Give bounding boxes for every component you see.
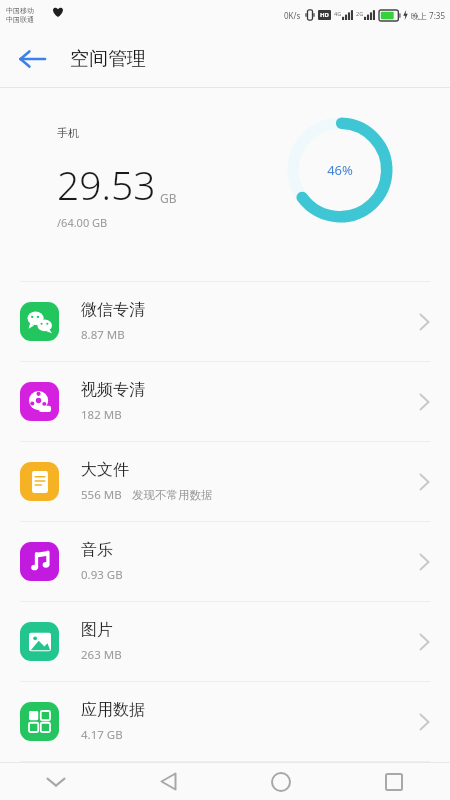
button[interactable]: 应用数据 bbox=[0, 682, 450, 761]
staticText: 图片 bbox=[81, 620, 113, 640]
staticText: 中国移动 bbox=[6, 6, 34, 15]
staticText: /64.00 GB bbox=[57, 215, 108, 230]
staticText: 中国联通 bbox=[6, 15, 34, 24]
staticText: 4G bbox=[334, 10, 342, 17]
staticText: 182 MB bbox=[81, 407, 122, 423]
button[interactable]: 音乐 bbox=[0, 522, 450, 601]
button[interactable]: 图片 bbox=[0, 602, 450, 681]
staticText: HD bbox=[320, 11, 329, 19]
staticText: 微信专清 bbox=[81, 300, 145, 320]
staticText: 263 MB bbox=[81, 647, 122, 663]
staticText: 0K/s bbox=[284, 10, 301, 21]
staticText: 46% bbox=[327, 161, 353, 179]
staticText: 发现不常用数据 bbox=[132, 488, 213, 502]
staticText: 视频专清 bbox=[81, 380, 145, 400]
staticText: 手机 bbox=[57, 126, 79, 140]
staticText: GB bbox=[160, 190, 177, 206]
button[interactable]: Home bbox=[224, 763, 337, 800]
staticText: 应用数据 bbox=[81, 700, 145, 720]
staticText: 556 MB bbox=[81, 487, 122, 503]
staticText: 4.17 GB bbox=[81, 727, 123, 743]
staticText: 29.53 bbox=[57, 158, 156, 211]
button[interactable]: 大文件 bbox=[0, 442, 450, 521]
button[interactable]: Recents bbox=[337, 763, 450, 800]
staticText: 8.87 MB bbox=[81, 327, 125, 343]
staticText: 大文件 bbox=[81, 460, 129, 480]
button[interactable]: 微信专清 bbox=[0, 282, 450, 361]
button[interactable]: 视频专清 bbox=[0, 362, 450, 441]
staticText: 空间管理 bbox=[70, 47, 146, 71]
button[interactable]: Hide keyboard bbox=[0, 763, 112, 800]
button[interactable]: Back bbox=[8, 35, 56, 83]
staticText: 0.93 GB bbox=[81, 567, 123, 583]
staticText: 音乐 bbox=[81, 540, 113, 560]
button[interactable]: Back bbox=[112, 763, 224, 800]
staticText: 晚上 7:35 bbox=[411, 10, 445, 21]
staticText: 2G bbox=[356, 10, 364, 17]
